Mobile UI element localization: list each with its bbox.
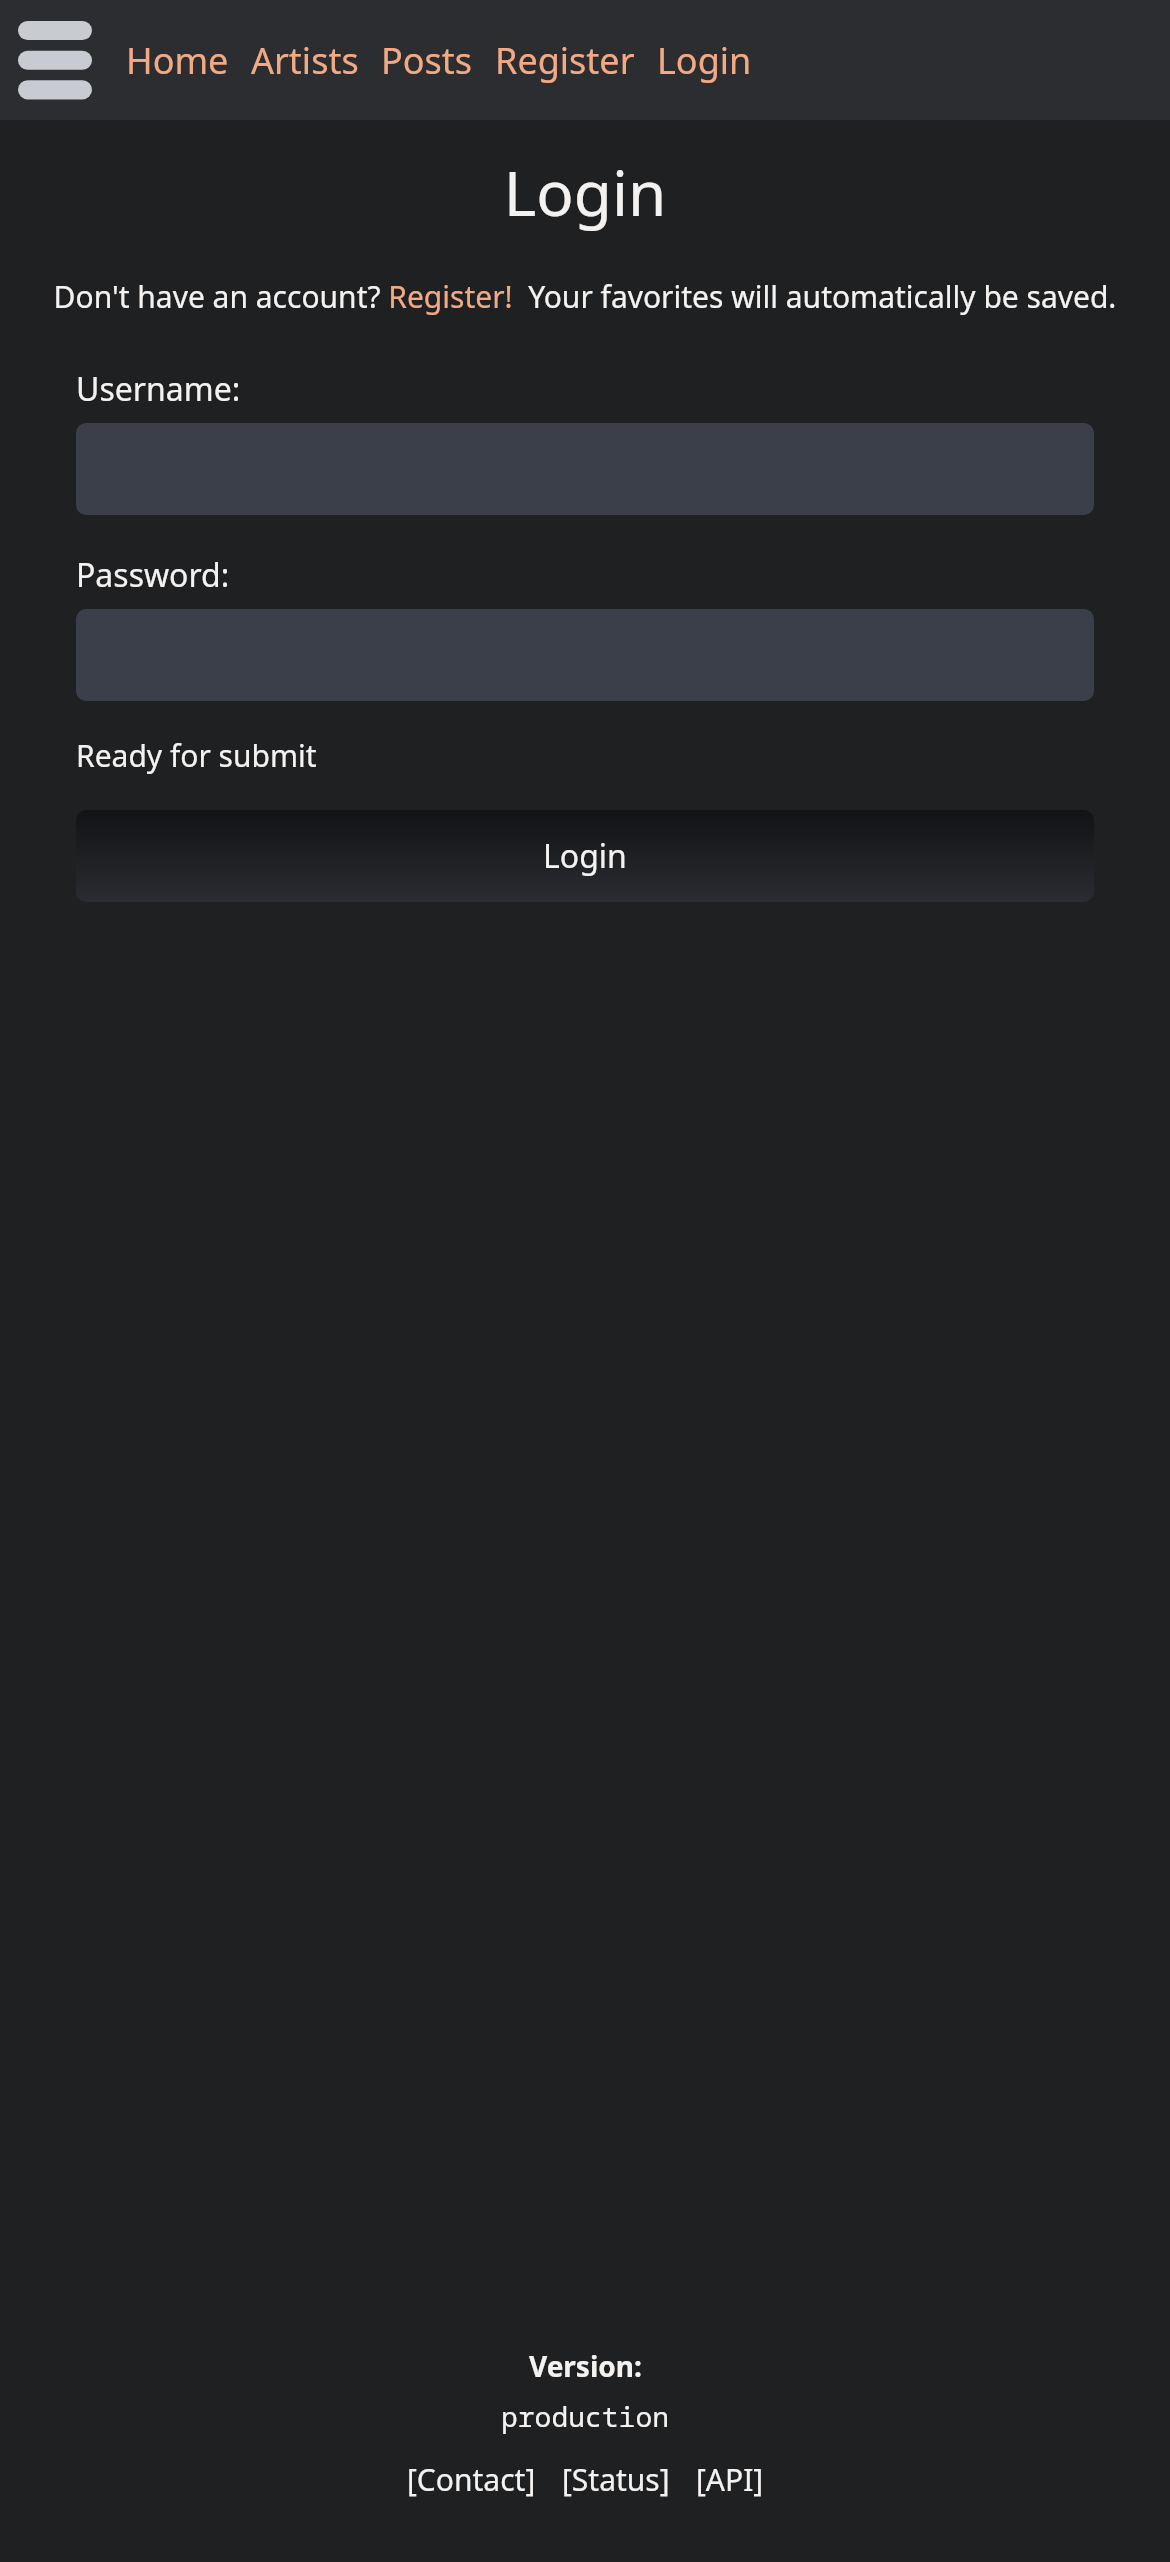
staticText: Ready for submit bbox=[76, 735, 317, 776]
staticText: Password: bbox=[76, 553, 230, 597]
staticText: Artists bbox=[251, 36, 359, 85]
button[interactable]: [Status] bbox=[560, 2455, 672, 2504]
staticText: Username: bbox=[76, 367, 241, 411]
button[interactable]: Login bbox=[76, 810, 1094, 902]
staticText: production bbox=[501, 2397, 670, 2435]
button[interactable]: Open menu bbox=[18, 21, 92, 99]
button[interactable]: [Contact] bbox=[405, 2455, 538, 2504]
staticText: Don't have an account? Register! Your fa… bbox=[4, 276, 1166, 317]
staticText: Home bbox=[126, 36, 229, 85]
staticText: Posts bbox=[381, 36, 473, 85]
staticText: Version: bbox=[529, 2347, 642, 2385]
staticText: [API] bbox=[696, 2459, 764, 2500]
staticText: [Status] bbox=[562, 2459, 670, 2500]
button[interactable]: Login bbox=[655, 28, 754, 93]
staticText: Register bbox=[495, 36, 635, 85]
staticText: [Contact] bbox=[407, 2459, 536, 2500]
button[interactable]: Register bbox=[493, 28, 637, 93]
button[interactable]: Posts bbox=[379, 28, 475, 93]
staticText: Login bbox=[657, 36, 752, 85]
button[interactable]: [API] bbox=[694, 2455, 766, 2504]
button[interactable]: Home bbox=[124, 28, 231, 93]
staticText: Login bbox=[0, 150, 1170, 234]
staticText: Login bbox=[543, 834, 627, 878]
button[interactable]: Artists bbox=[249, 28, 361, 93]
